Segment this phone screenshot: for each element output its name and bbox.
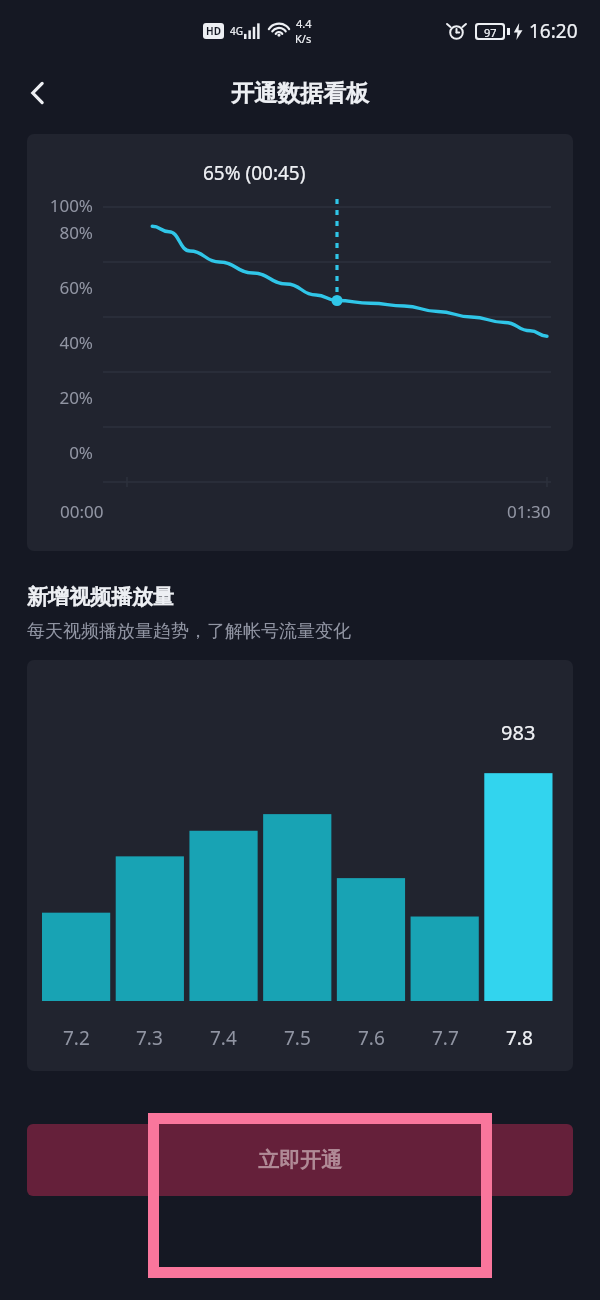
staticText: 7.6	[358, 1025, 385, 1051]
staticText: 7.8	[506, 1025, 533, 1051]
staticText: 立即开通	[258, 1147, 342, 1173]
staticText: 每天视频播放量趋势，了解帐号流量变化	[27, 620, 351, 643]
staticText: HD	[206, 24, 221, 38]
staticText: 7.5	[284, 1025, 311, 1051]
staticText: 983	[501, 719, 536, 746]
staticText: 40%	[59, 331, 93, 354]
staticText: 7.7	[432, 1025, 459, 1051]
staticText: 新增视频播放量	[27, 584, 174, 610]
staticText: 00:00	[60, 500, 104, 523]
staticText: 7.3	[136, 1025, 163, 1051]
button[interactable]: Back	[14, 69, 62, 117]
staticText: 97	[484, 25, 497, 38]
staticText: 20%	[59, 386, 93, 409]
staticText: 100%	[49, 194, 93, 217]
staticText: 01:30	[507, 500, 551, 523]
staticText: K/s	[295, 31, 312, 46]
staticText: 65% (00:45)	[203, 160, 306, 186]
staticText: 7.2	[63, 1025, 90, 1051]
staticText: 60%	[59, 276, 93, 299]
staticText: 0%	[69, 441, 93, 464]
staticText: 16:20	[529, 18, 578, 44]
staticText: 开通数据看板	[231, 79, 369, 108]
staticText: 4G	[230, 24, 243, 38]
staticText: 4.4	[296, 16, 312, 31]
button[interactable]: 立即开通	[27, 1124, 573, 1196]
staticText: 7.4	[210, 1025, 237, 1051]
staticText: 80%	[59, 221, 93, 244]
